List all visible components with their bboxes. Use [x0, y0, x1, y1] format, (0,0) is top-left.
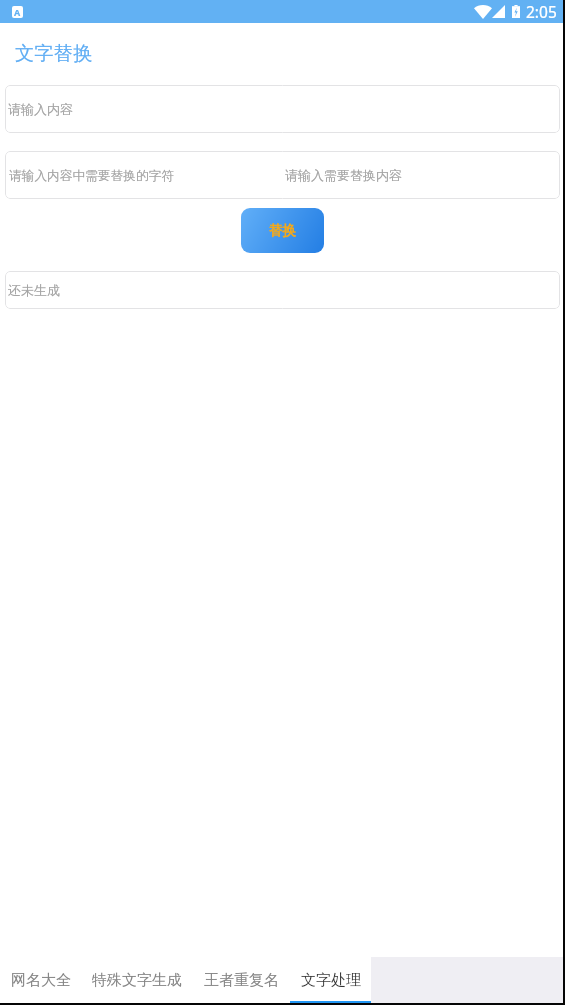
staticText: 2:05 [526, 1, 557, 22]
button[interactable]: 特殊文字生成 [81, 957, 192, 1003]
staticText: 还未生成 [8, 282, 60, 298]
button[interactable]: 替换 [241, 208, 324, 253]
button[interactable]: 请输入内容 [5, 85, 560, 133]
button[interactable]: 文字处理 [290, 957, 371, 1003]
button[interactable]: 还未生成 [5, 271, 560, 309]
staticText: 网名大全 [11, 971, 71, 990]
staticText: A [14, 6, 21, 18]
staticText: 请输入需要替换内容 [285, 167, 402, 183]
staticText: 特殊文字生成 [92, 971, 182, 990]
button[interactable]: 王者重复名 [192, 957, 290, 1003]
button[interactable]: 网名大全 [0, 957, 81, 1003]
staticText: 请输入内容 [8, 101, 73, 117]
other: App icon [12, 6, 23, 18]
staticText: 文字替换 [15, 41, 93, 65]
button[interactable]: 请输入内容中需要替换的字符 [5, 151, 560, 199]
staticText: 请输入内容中需要替换的字符 [9, 168, 174, 184]
staticText: 替换 [269, 222, 296, 239]
staticText: 王者重复名 [204, 971, 279, 990]
staticText: 文字处理 [301, 971, 361, 990]
